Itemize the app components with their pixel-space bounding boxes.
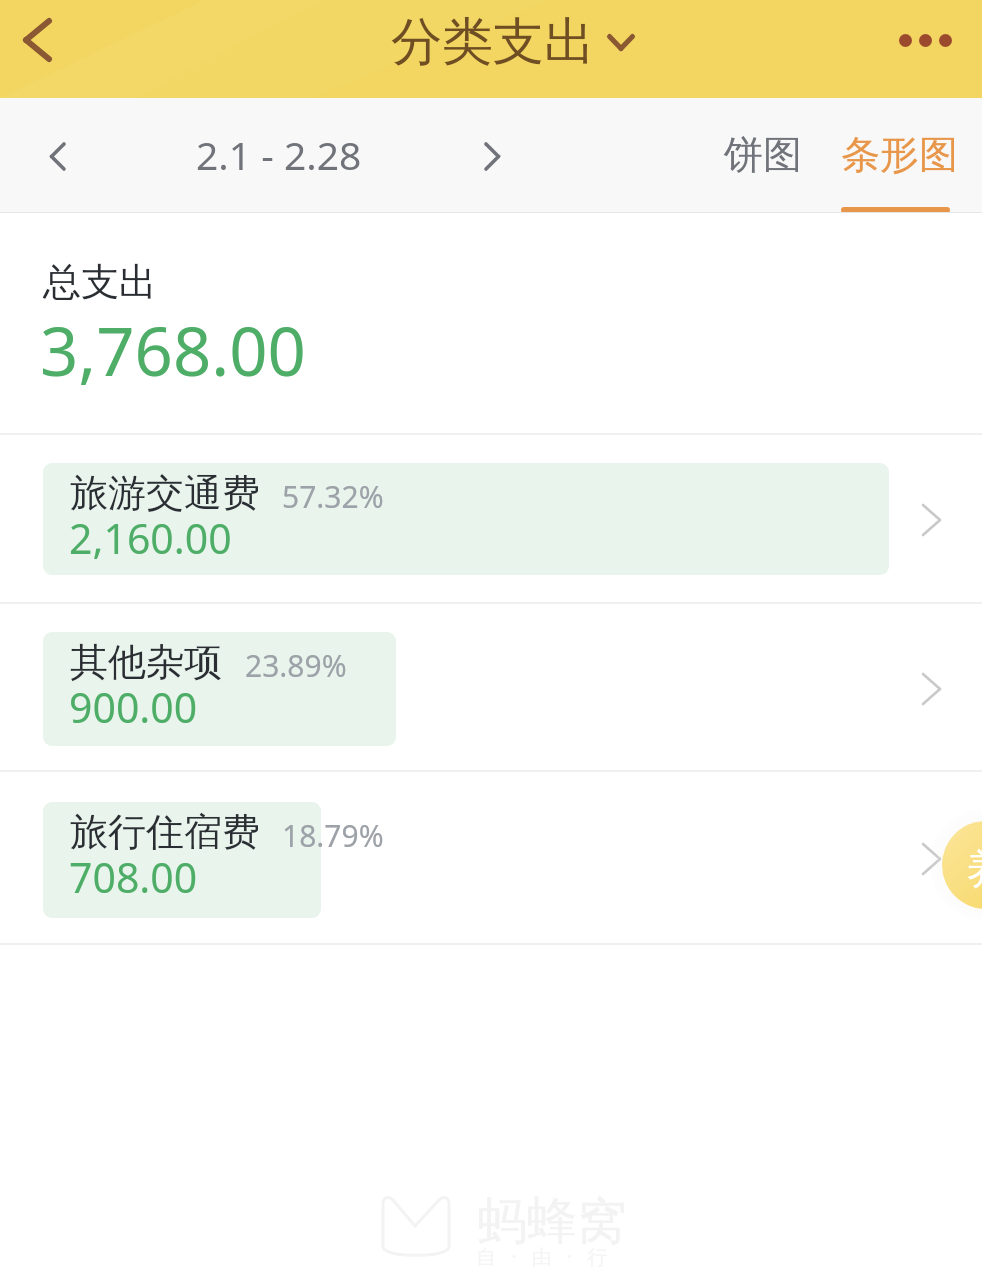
button[interactable]: 其他杂项 <box>0 604 982 772</box>
staticText: 旅游交通费 <box>70 469 260 517</box>
staticText: 饼图 <box>724 130 802 179</box>
staticText: 旅行住宿费 <box>70 808 260 856</box>
staticText: 708.00 <box>69 849 198 905</box>
staticText: 23.89% <box>245 645 347 686</box>
staticText: 900.00 <box>69 679 198 735</box>
button[interactable]: Next period <box>435 98 549 213</box>
button[interactable]: Previous period <box>0 98 114 213</box>
staticText: 2.1 - 2.28 <box>196 128 362 181</box>
staticText: 养 <box>966 844 982 894</box>
button[interactable]: 饼图 <box>700 98 820 213</box>
button[interactable]: Back <box>0 0 78 98</box>
staticText: 18.79% <box>282 815 384 856</box>
staticText: 条形图 <box>841 130 958 179</box>
button[interactable]: 2.1 - 2.28 <box>170 112 385 200</box>
button[interactable]: 旅行住宿费 <box>0 772 982 945</box>
button[interactable]: More options <box>862 0 982 98</box>
staticText: 其他杂项 <box>70 638 222 686</box>
staticText: 蚂蜂窝 <box>477 1190 627 1253</box>
staticText: 分类支出 <box>391 10 595 74</box>
staticText: 总支出 <box>43 258 157 306</box>
button[interactable]: Add expense <box>942 821 982 909</box>
staticText: 57.32% <box>282 476 384 517</box>
button[interactable]: 旅游交通费 <box>0 432 982 604</box>
button[interactable]: 分类支出 <box>380 4 648 74</box>
staticText: 2,160.00 <box>69 510 232 566</box>
staticText: 3,768.00 <box>40 304 306 395</box>
button[interactable]: 条形图 <box>824 98 967 213</box>
